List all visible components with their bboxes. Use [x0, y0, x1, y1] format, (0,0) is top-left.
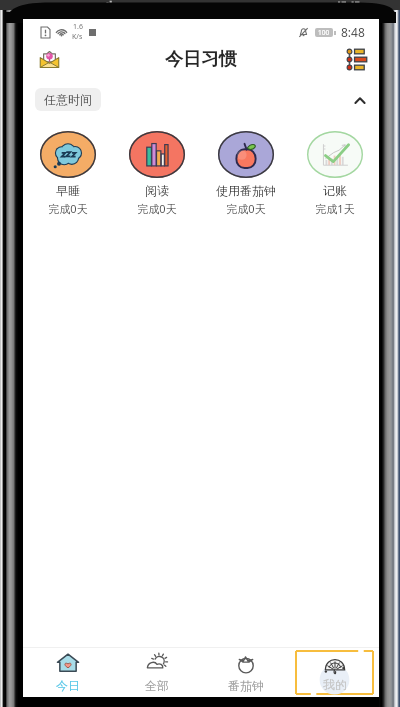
staticText: 今日: [56, 678, 80, 693]
button[interactable]: Messages: [34, 45, 64, 74]
button[interactable]: Collapse section: [349, 89, 371, 111]
staticText: 使用番茄钟: [216, 183, 276, 198]
button[interactable]: Habit list: [342, 45, 372, 74]
staticText: 阅读: [145, 183, 169, 198]
staticText: 全部: [145, 678, 169, 693]
button[interactable]: 使用番茄钟: [201, 131, 290, 216]
staticText: 1.6: [73, 22, 83, 32]
staticText: 完成0天: [226, 201, 266, 216]
staticText: 今日习惯: [165, 48, 237, 71]
staticText: 完成0天: [137, 201, 177, 216]
staticText: 番茄钟: [228, 678, 264, 693]
staticText: 记账: [323, 183, 347, 198]
button[interactable]: 番茄钟: [201, 648, 290, 697]
staticText: 完成1天: [315, 201, 355, 216]
staticText: 100: [318, 28, 330, 37]
staticText: 早睡: [56, 183, 80, 198]
button[interactable]: 记账: [290, 131, 379, 216]
staticText: K/s: [72, 32, 83, 42]
staticText: 8:48: [341, 24, 365, 40]
button[interactable]: 全部: [112, 648, 201, 697]
button[interactable]: 今日: [23, 648, 112, 697]
button[interactable]: 阅读: [112, 131, 201, 216]
button[interactable]: 任意时间: [35, 88, 101, 111]
button[interactable]: 我的: [295, 650, 374, 695]
staticText: 任意时间: [44, 92, 92, 107]
staticText: 完成0天: [48, 201, 88, 216]
staticText: 我的: [323, 677, 347, 692]
button[interactable]: 早睡: [23, 131, 112, 216]
